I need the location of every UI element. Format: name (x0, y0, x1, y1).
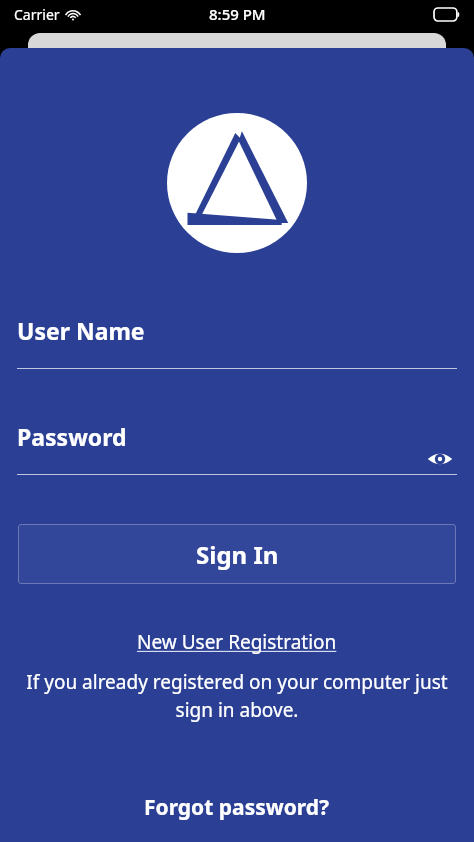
button[interactable]: Show password (420, 439, 460, 479)
staticText: New User Registration (137, 629, 337, 655)
staticText: If you already registered on your comput… (22, 669, 452, 723)
button[interactable]: New User Registration (129, 625, 345, 659)
staticText: 8:59 PM (209, 4, 266, 24)
staticText: Password (17, 421, 127, 452)
button[interactable]: Sign In (18, 524, 456, 584)
button[interactable]: Forgot password? (134, 787, 340, 828)
staticText: Forgot password? (144, 793, 330, 822)
staticText: Carrier (14, 5, 60, 24)
button[interactable]: User Name (0, 315, 474, 369)
staticText: User Name (17, 315, 145, 346)
staticText: Sign In (196, 538, 279, 571)
button[interactable]: Password (0, 421, 474, 475)
